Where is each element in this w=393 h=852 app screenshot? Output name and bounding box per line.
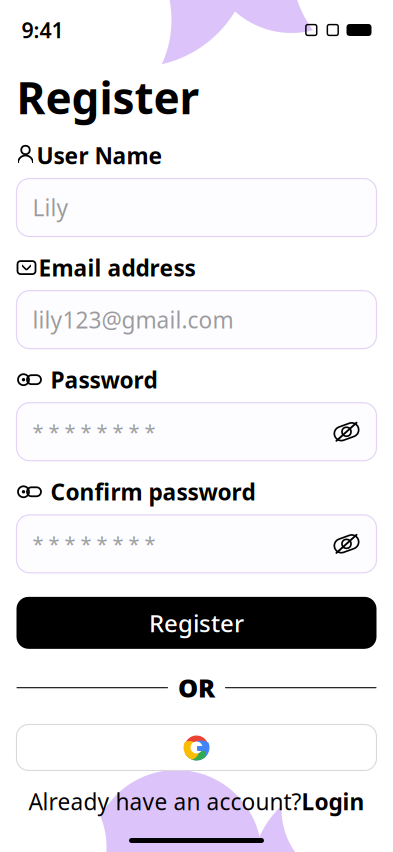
staticText: * * * * * * * * (32, 531, 155, 557)
staticText: 9:41 (21, 16, 63, 44)
staticText: Email address (38, 252, 195, 283)
button[interactable]: Lily (16, 178, 376, 236)
button[interactable]: * * * * * * * * (16, 515, 376, 573)
staticText: Lily (32, 192, 68, 223)
button[interactable]: Register (16, 597, 376, 649)
staticText: Login (301, 786, 364, 817)
staticText: Password (50, 365, 157, 395)
staticText: Confirm password (50, 477, 255, 507)
staticText: * * * * * * * * (32, 418, 155, 445)
button[interactable]: Sign up with Google (16, 724, 376, 770)
staticText: Register (16, 68, 199, 126)
staticText: lily123@gmail.com (32, 305, 233, 335)
button[interactable]: Login (301, 786, 364, 817)
staticText: Register (149, 607, 244, 639)
button[interactable]: lily123@gmail.com (16, 291, 376, 349)
button[interactable]: * * * * * * * * (16, 403, 376, 461)
staticText: OR (178, 671, 215, 704)
staticText: User Name (36, 140, 162, 170)
staticText: Already have an account? (28, 786, 301, 817)
